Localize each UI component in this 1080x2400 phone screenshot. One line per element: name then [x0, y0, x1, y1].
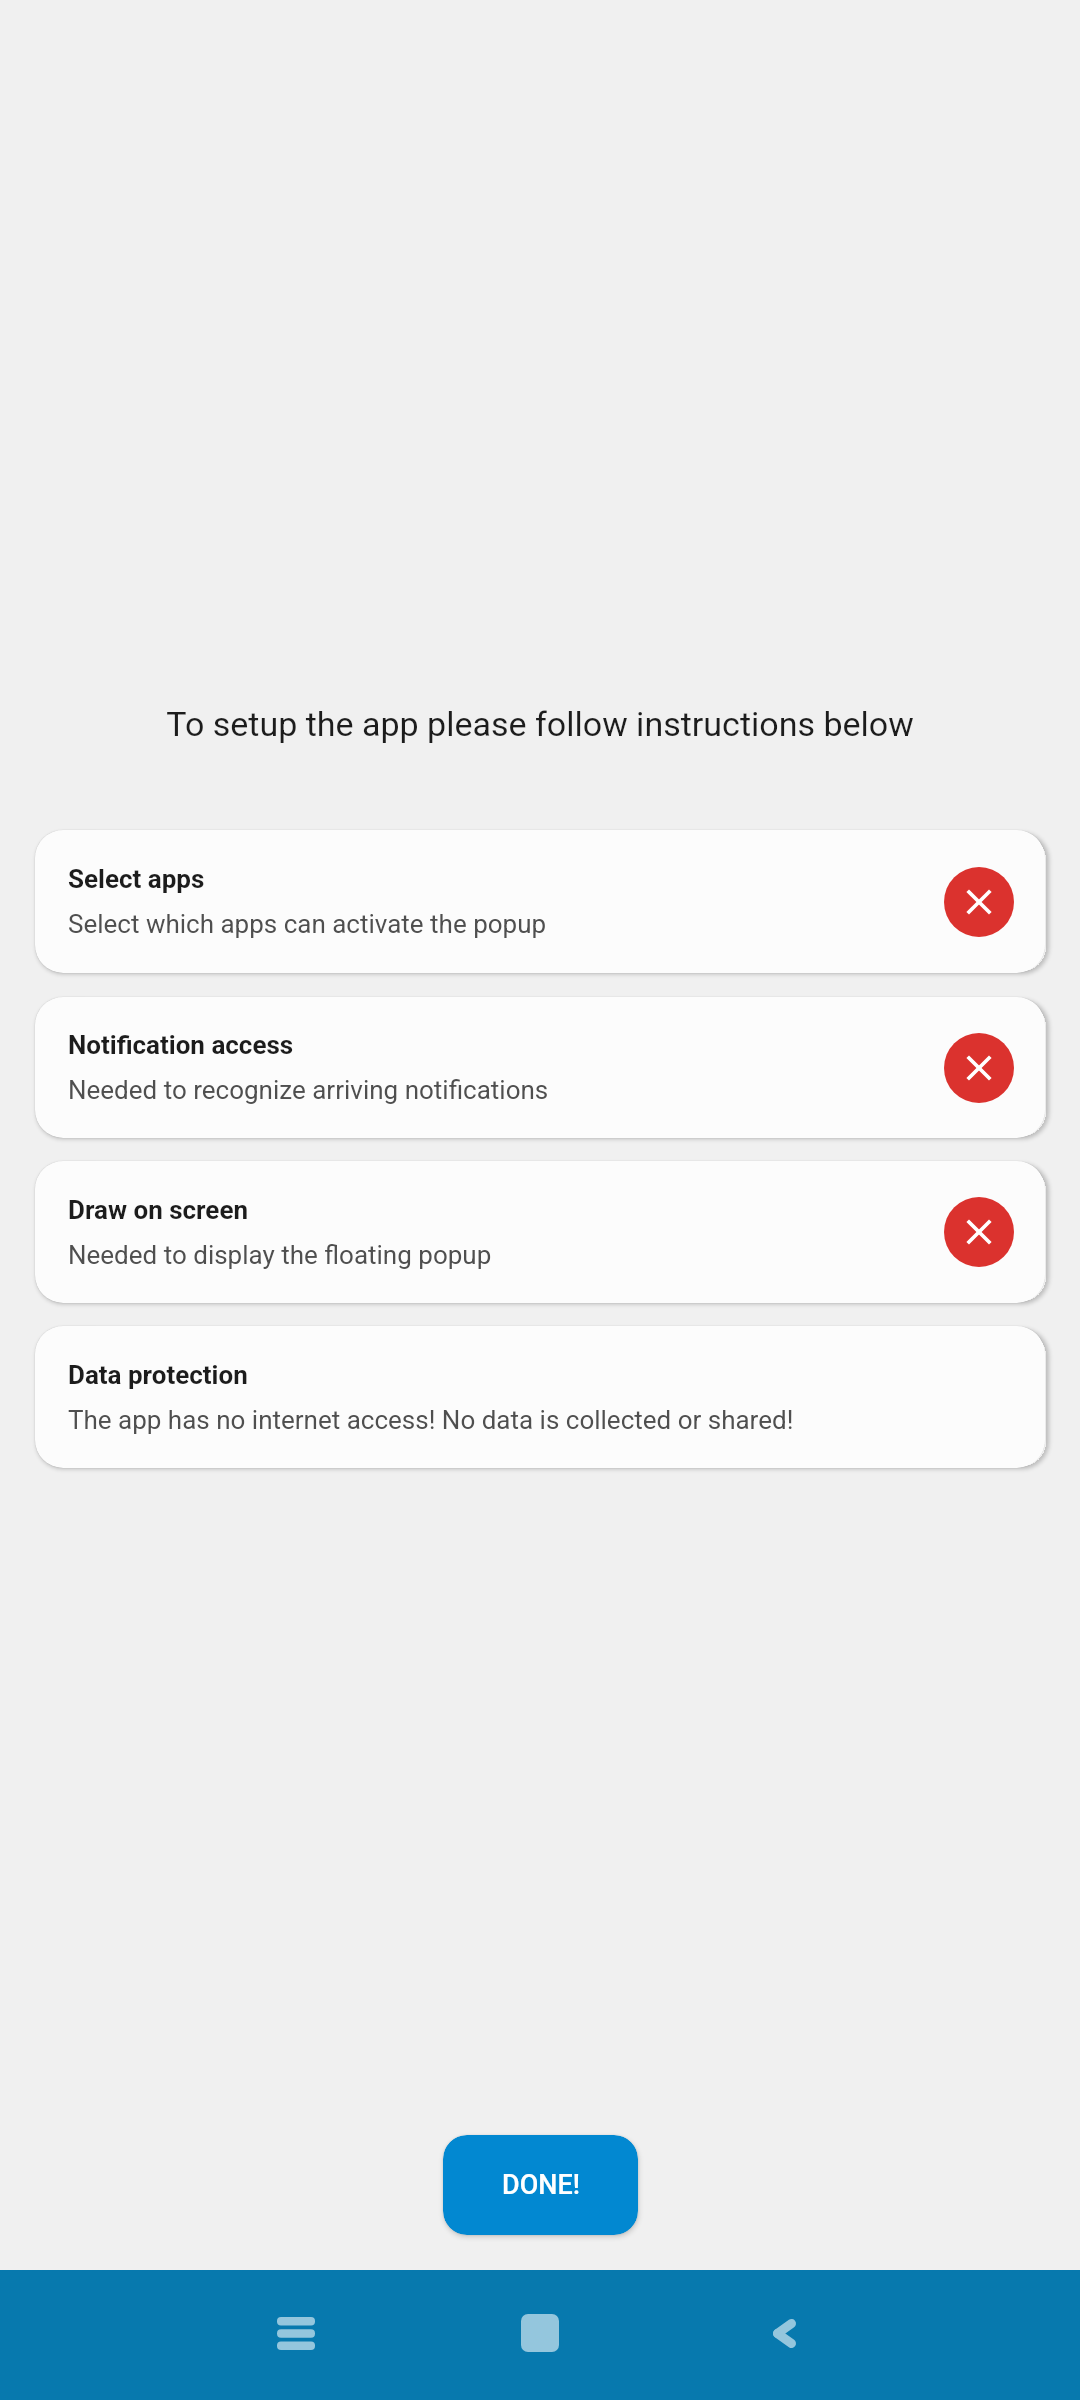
staticText: Select which apps can activate the popup [68, 909, 547, 939]
button[interactable]: Permission not granted [944, 867, 1014, 937]
button[interactable]: Home [480, 2273, 600, 2393]
button[interactable]: DONE! [443, 2135, 638, 2235]
button[interactable]: Permission not granted [944, 1033, 1014, 1103]
button[interactable]: Data protection [35, 1326, 1045, 1468]
button[interactable]: Draw on screen [35, 1161, 1045, 1303]
staticText: Notification access [68, 1030, 294, 1060]
button[interactable]: Select apps [35, 830, 1045, 973]
staticText: Select apps [68, 864, 205, 894]
staticText: To setup the app please follow instructi… [0, 704, 1080, 744]
staticText: Data protection [68, 1360, 248, 1390]
staticText: Needed to display the floating popup [68, 1240, 492, 1270]
button[interactable]: Recent apps [236, 2273, 356, 2393]
staticText: The app has no internet access! No data … [68, 1405, 794, 1435]
staticText: DONE! [502, 2169, 580, 2201]
button[interactable]: Permission not granted [944, 1197, 1014, 1267]
button[interactable]: Notification access [35, 997, 1045, 1138]
button[interactable]: Back [724, 2273, 844, 2393]
staticText: Draw on screen [68, 1195, 249, 1225]
staticText: Needed to recognize arriving notificatio… [68, 1075, 549, 1105]
